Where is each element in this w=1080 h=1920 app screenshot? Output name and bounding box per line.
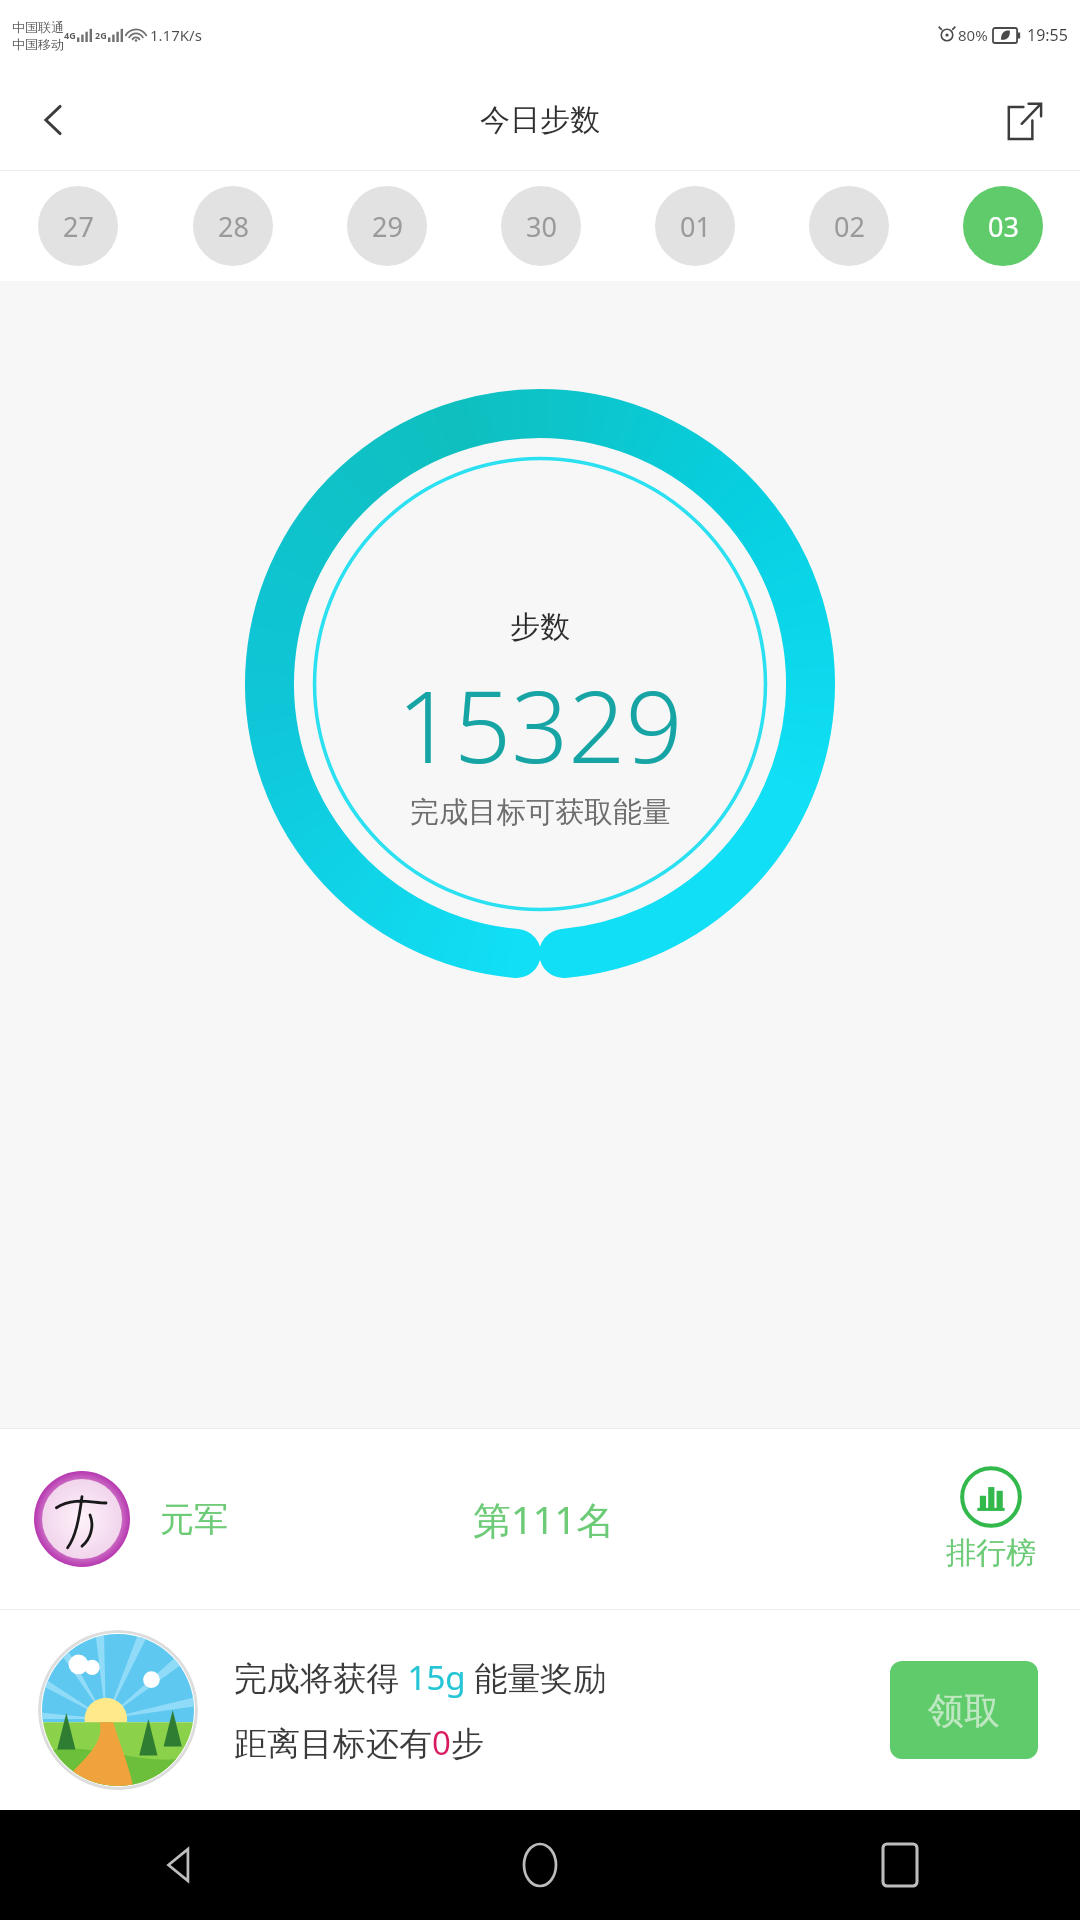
staticText: 02 <box>834 208 865 245</box>
button[interactable]: 27 <box>38 186 118 266</box>
button[interactable]: 28 <box>193 186 273 266</box>
staticText: 01 <box>680 208 711 245</box>
button[interactable]: Back <box>140 1825 220 1905</box>
staticText: 距离目标还有0步 <box>234 1720 484 1765</box>
staticText: 2G <box>95 29 107 41</box>
staticText: 中国联通 <box>12 19 64 35</box>
button[interactable]: 排行榜 <box>946 1466 1036 1572</box>
staticText: 中国移动 <box>12 36 64 52</box>
staticText: 完成目标可获取能量 <box>410 794 671 831</box>
button[interactable]: 02 <box>809 186 889 266</box>
staticText: 领取 <box>928 1688 1000 1733</box>
button[interactable]: 领取 <box>890 1661 1038 1759</box>
staticText: 19:55 <box>1027 24 1068 46</box>
button[interactable]: 元军 <box>0 1429 1080 1609</box>
button[interactable]: 30 <box>501 186 581 266</box>
staticText: 4G <box>64 29 76 41</box>
staticText: 排行榜 <box>946 1534 1036 1572</box>
staticText: 步数 <box>510 608 570 646</box>
staticText: 元军 <box>160 1498 228 1541</box>
staticText: 28 <box>218 208 249 245</box>
button[interactable]: 03 <box>963 186 1043 266</box>
button[interactable]: Share <box>992 88 1056 152</box>
button[interactable]: Recents <box>860 1825 940 1905</box>
staticText: 29 <box>372 208 403 245</box>
staticText: 第111名 <box>473 1493 615 1545</box>
button[interactable]: Home <box>500 1825 580 1905</box>
staticText: 15329 <box>397 656 683 792</box>
button[interactable]: 29 <box>347 186 427 266</box>
staticText: 完成将获得 15g 能量奖励 <box>234 1655 607 1700</box>
staticText: 03 <box>988 208 1019 245</box>
staticText: 1.17K/s <box>150 25 202 45</box>
staticText: 80% <box>958 25 988 45</box>
staticText: 今日步数 <box>480 101 600 139</box>
button[interactable]: 01 <box>655 186 735 266</box>
staticText: 30 <box>526 208 557 245</box>
staticText: 27 <box>63 208 94 245</box>
button[interactable]: Back <box>22 88 86 152</box>
